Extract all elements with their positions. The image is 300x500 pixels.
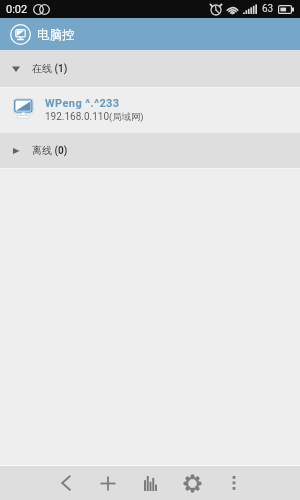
staticText: WPeng ^.^233 [45,97,120,110]
button[interactable]: Settings [171,466,213,500]
staticText: 63 [262,3,274,15]
button[interactable]: More options [213,466,255,500]
button[interactable]: App icon [0,18,300,50]
button[interactable]: WPeng ^.^233 [0,88,300,133]
button[interactable]: 离线 (0) [0,133,300,168]
button[interactable]: Add [87,466,129,500]
staticText: 电脑控 [37,27,75,43]
other: App icon [10,24,31,45]
button[interactable]: Back [45,466,87,500]
button[interactable]: Statistics [129,466,171,500]
staticText: 在线 (1) [32,62,68,75]
staticText: 192.168.0.110(局域网) [45,111,144,123]
button[interactable]: 在线 (1) [0,50,300,87]
staticText: 0:02 [6,3,28,16]
staticText: 离线 (0) [32,144,68,157]
